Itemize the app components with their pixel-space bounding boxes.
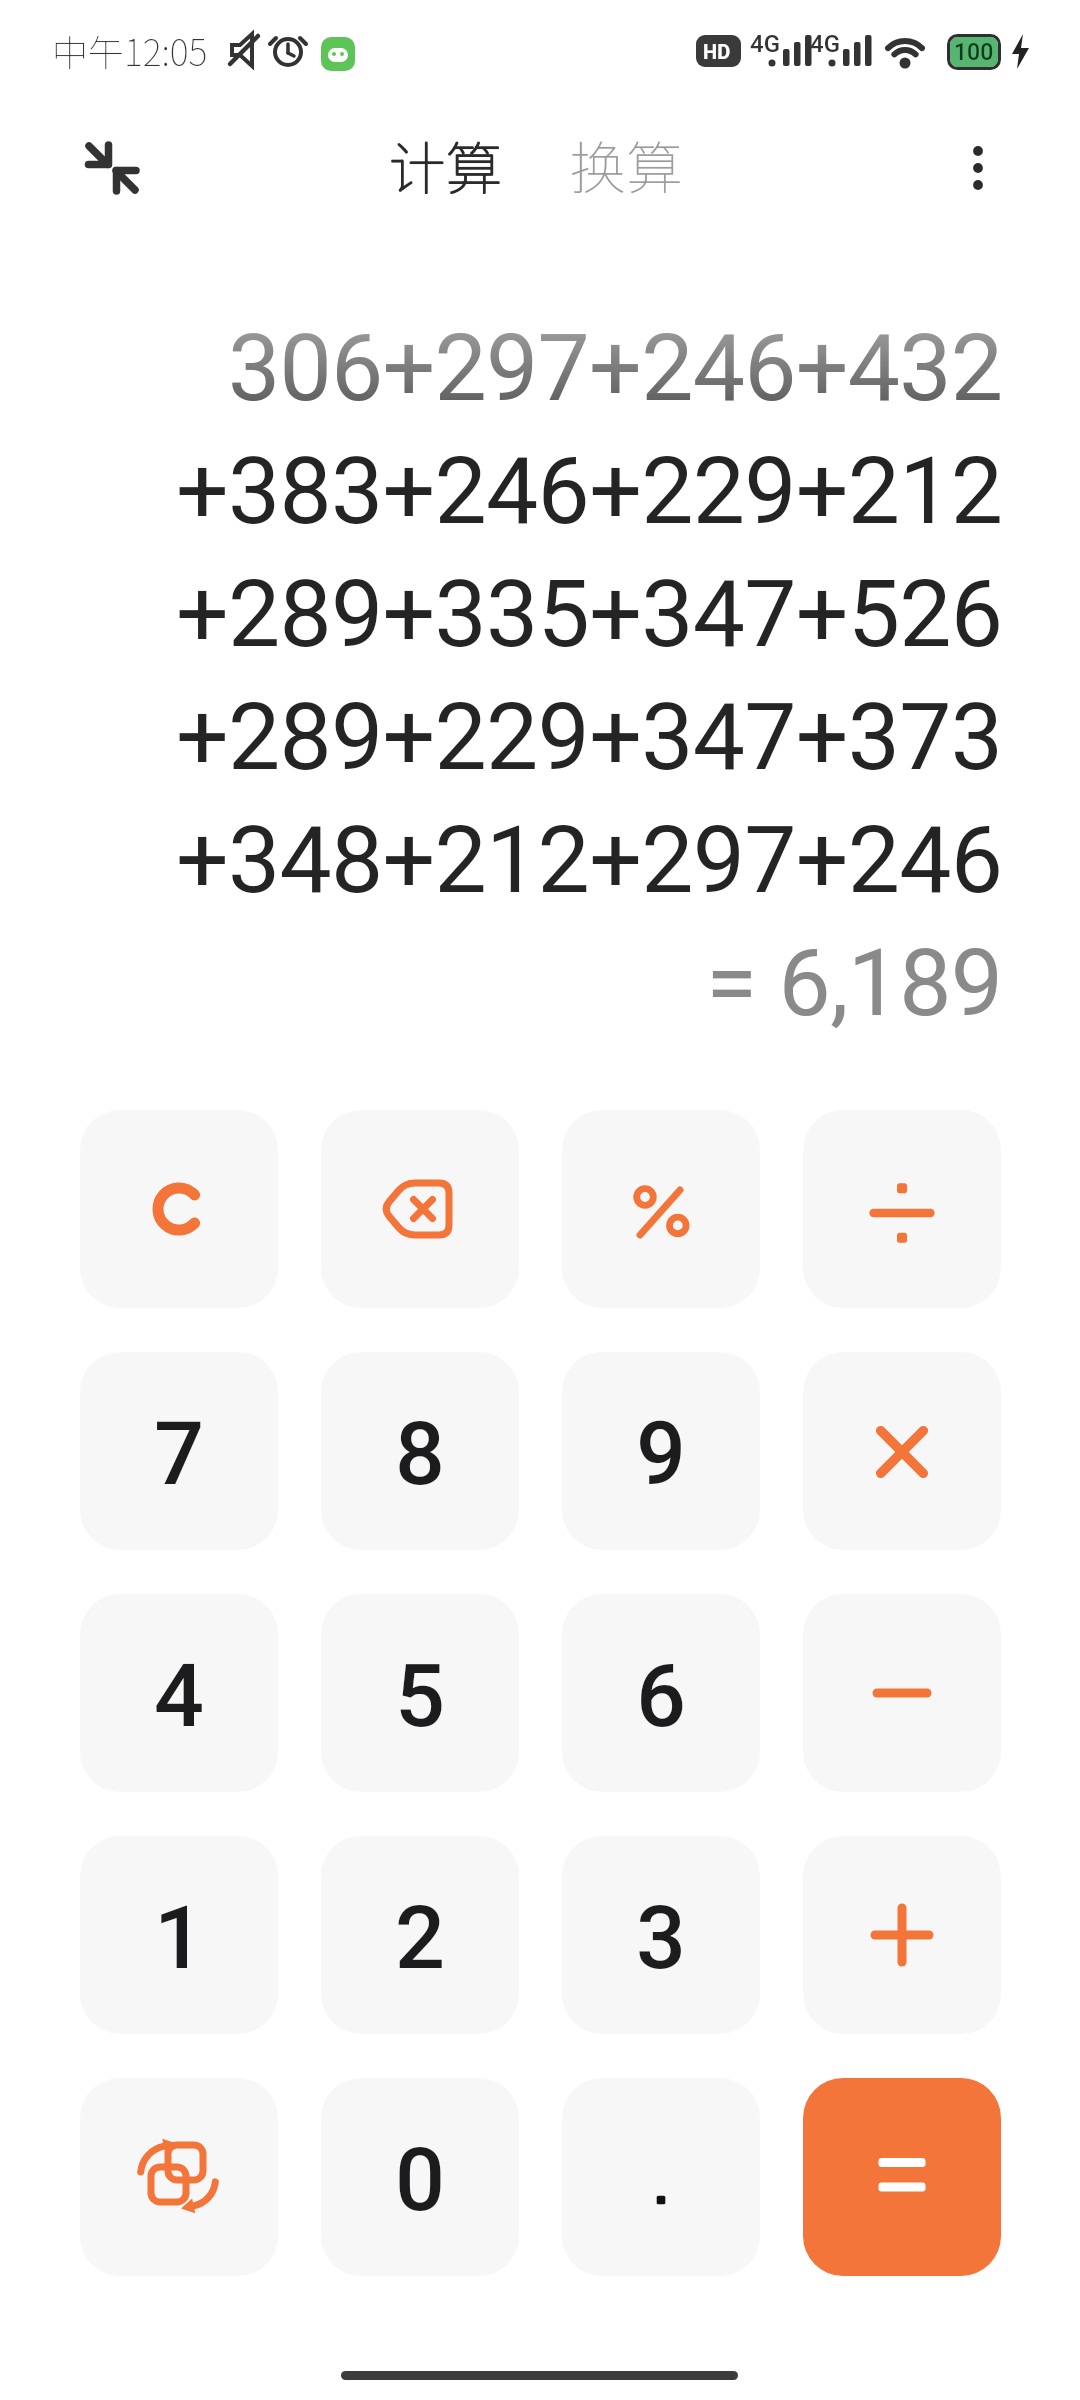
- button[interactable]: 1: [80, 1836, 278, 2034]
- staticText: 4: [154, 1644, 205, 1747]
- button[interactable]: 5: [321, 1594, 519, 1792]
- staticText: +289+229+347+373: [176, 683, 1003, 792]
- button[interactable]: 3: [562, 1836, 760, 2034]
- staticText: 6: [636, 1644, 687, 1747]
- staticText: +289+335+347+526: [176, 560, 1003, 669]
- staticText: 中午12:05: [52, 24, 208, 76]
- staticText: 2: [395, 1886, 446, 1989]
- staticText: 计算: [388, 124, 502, 194]
- button[interactable]: 0: [321, 2078, 519, 2276]
- staticText: 0: [395, 2128, 446, 2231]
- staticText: 计算: [389, 123, 503, 193]
- staticText: 计算: [389, 124, 503, 194]
- button[interactable]: [803, 1594, 1001, 1792]
- staticText: 306+297+246+432: [228, 314, 1003, 423]
- button[interactable]: [803, 1352, 1001, 1550]
- staticText: +348+212+297+246: [176, 806, 1003, 915]
- button[interactable]: [80, 1110, 278, 1308]
- button[interactable]: 换算: [566, 123, 686, 193]
- button[interactable]: [562, 2078, 760, 2276]
- staticText: = 6,189: [706, 929, 1003, 1038]
- button[interactable]: 9: [562, 1352, 760, 1550]
- staticText: 4G: [810, 30, 840, 56]
- staticText: 8: [395, 1402, 446, 1505]
- staticText: +383+246+229+212: [176, 437, 1003, 546]
- staticText: 5: [395, 1644, 446, 1747]
- staticText: 计算: [388, 123, 502, 193]
- button[interactable]: 4: [80, 1594, 278, 1792]
- staticText: 7: [154, 1402, 205, 1505]
- staticText: 4G: [750, 30, 780, 56]
- button[interactable]: [562, 1110, 760, 1308]
- button[interactable]: 8: [321, 1352, 519, 1550]
- button[interactable]: [945, 130, 1011, 206]
- button[interactable]: 6: [562, 1594, 760, 1792]
- staticText: 1: [154, 1886, 205, 1989]
- button[interactable]: [803, 1836, 1001, 2034]
- staticText: 9: [636, 1402, 687, 1505]
- staticText: HD: [703, 40, 731, 63]
- button[interactable]: [80, 2078, 278, 2276]
- button[interactable]: 2: [321, 1836, 519, 2034]
- button[interactable]: [70, 125, 155, 210]
- staticText: 3: [636, 1886, 687, 1989]
- staticText: 100: [954, 39, 994, 66]
- button[interactable]: [321, 1110, 519, 1308]
- button[interactable]: [803, 1110, 1001, 1308]
- button[interactable]: [803, 2078, 1001, 2276]
- button[interactable]: 计算: [385, 123, 505, 193]
- staticText: 换算: [569, 123, 683, 193]
- button[interactable]: 7: [80, 1352, 278, 1550]
